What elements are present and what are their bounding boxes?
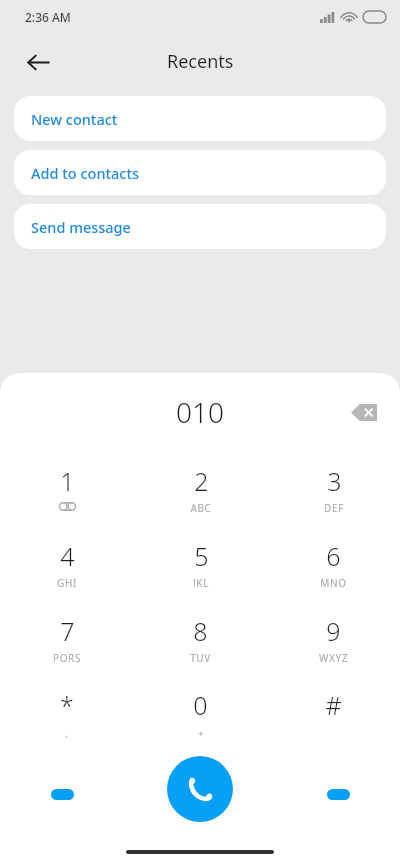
staticText: JKL bbox=[193, 576, 209, 587]
staticText: 6 bbox=[326, 539, 341, 573]
button[interactable]: 6 bbox=[267, 525, 400, 600]
button[interactable]: 7 bbox=[0, 600, 134, 675]
staticText: 5 bbox=[194, 539, 209, 573]
button[interactable]: Call bbox=[167, 756, 233, 822]
staticText: # bbox=[325, 688, 342, 722]
staticText: New contact bbox=[31, 109, 118, 129]
staticText: 2:36 AM bbox=[25, 9, 71, 25]
staticText: 0 bbox=[193, 688, 208, 722]
staticText: 7 bbox=[60, 614, 75, 648]
staticText: * bbox=[60, 688, 74, 722]
button[interactable]: # bbox=[267, 675, 400, 750]
button[interactable]: Add to contacts bbox=[14, 150, 386, 195]
button[interactable]: 2 bbox=[134, 450, 267, 525]
staticText: 1 bbox=[60, 464, 75, 498]
staticText: + bbox=[198, 727, 204, 738]
button[interactable]: Hide dialpad bbox=[314, 777, 362, 811]
staticText: Send message bbox=[31, 217, 131, 237]
button[interactable]: * bbox=[0, 675, 134, 750]
staticText: 4 bbox=[60, 539, 75, 573]
staticText: , bbox=[65, 727, 69, 738]
staticText: TUV bbox=[190, 651, 211, 662]
staticText: MNO bbox=[320, 576, 347, 587]
button[interactable]: Dialpad options bbox=[38, 777, 86, 811]
staticText: 010 bbox=[176, 393, 224, 431]
staticText: PQRS bbox=[53, 651, 81, 662]
button[interactable]: Backspace bbox=[340, 388, 388, 436]
staticText: 8 bbox=[193, 614, 208, 648]
button[interactable]: Back bbox=[14, 38, 62, 86]
button[interactable]: 3 bbox=[267, 450, 400, 525]
staticText: 9 bbox=[326, 614, 341, 648]
button[interactable]: 8 bbox=[134, 600, 267, 675]
staticText: 3 bbox=[327, 464, 342, 498]
button[interactable]: 5 bbox=[134, 525, 267, 600]
staticText: Recents bbox=[167, 49, 234, 74]
button[interactable]: 1 bbox=[0, 450, 134, 525]
staticText: Add to contacts bbox=[31, 163, 140, 183]
button[interactable]: Send message bbox=[14, 204, 386, 249]
button[interactable]: 4 bbox=[0, 525, 134, 600]
staticText: DEF bbox=[324, 501, 344, 512]
button[interactable]: 9 bbox=[267, 600, 400, 675]
staticText: WXYZ bbox=[319, 651, 348, 662]
staticText: 2 bbox=[194, 464, 209, 498]
staticText: GHI bbox=[57, 576, 77, 587]
button[interactable]: New contact bbox=[14, 96, 386, 141]
button[interactable]: 0 bbox=[134, 675, 267, 750]
staticText: ABC bbox=[190, 501, 212, 512]
